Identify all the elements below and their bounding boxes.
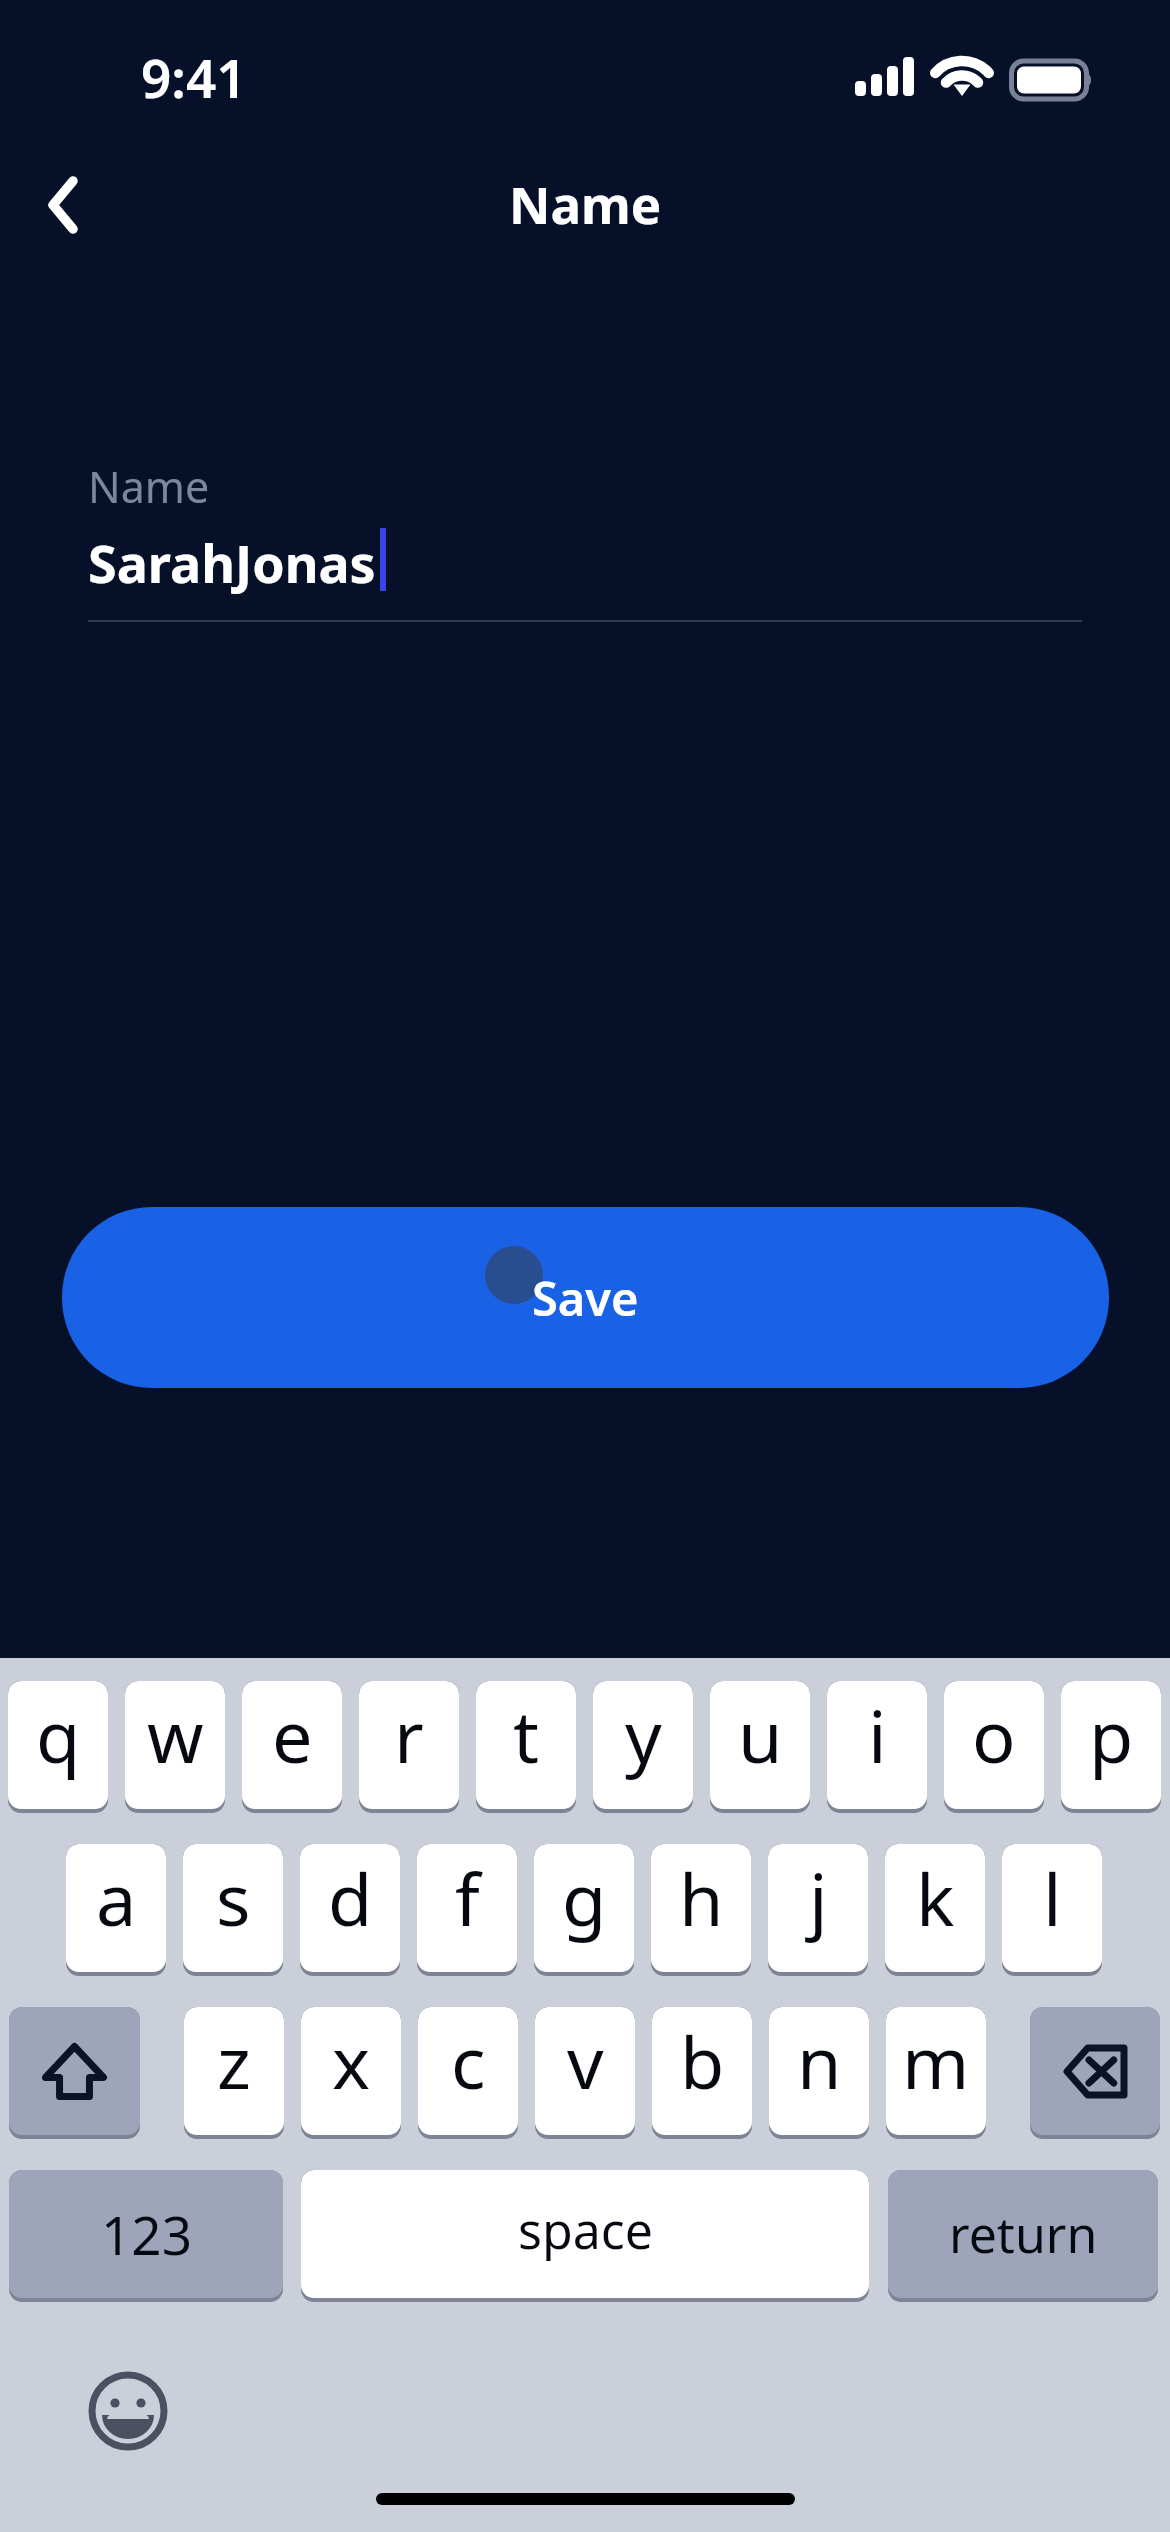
button[interactable]: Save	[62, 1207, 1109, 1388]
staticText: p	[1089, 1686, 1134, 1784]
button[interactable]: g	[534, 1844, 634, 1972]
button[interactable]: s	[183, 1844, 283, 1972]
button[interactable]: w	[125, 1681, 225, 1809]
button[interactable]: u	[710, 1681, 810, 1809]
staticText: e	[272, 1686, 313, 1784]
button[interactable]: b	[652, 2007, 752, 2135]
staticText: t	[513, 1686, 539, 1784]
staticText: f	[455, 1849, 480, 1947]
button[interactable]: c	[418, 2007, 518, 2135]
button[interactable]: Backspace	[1030, 2007, 1160, 2135]
button[interactable]: Back	[13, 155, 113, 255]
button[interactable]: f	[417, 1844, 517, 1972]
button[interactable]: 123	[9, 2170, 283, 2298]
staticText: 9:41	[141, 41, 247, 113]
staticText: j	[809, 1849, 828, 1947]
button[interactable]: r	[359, 1681, 459, 1809]
staticText: b	[680, 2012, 725, 2110]
staticText: z	[217, 2012, 251, 2110]
button[interactable]: k	[885, 1844, 985, 1972]
button[interactable]: q	[8, 1681, 108, 1809]
button[interactable]: o	[944, 1681, 1044, 1809]
staticText: l	[1043, 1849, 1062, 1947]
button[interactable]: a	[66, 1844, 166, 1972]
button[interactable]: Name	[88, 452, 1082, 624]
staticText: v	[567, 2012, 604, 2110]
staticText: y	[625, 1686, 662, 1784]
staticText: n	[797, 2012, 842, 2110]
staticText: m	[902, 2012, 970, 2110]
staticText: space	[518, 2196, 653, 2264]
button[interactable]: n	[769, 2007, 869, 2135]
button[interactable]: Emoji keyboard	[86, 2369, 170, 2453]
button[interactable]: h	[651, 1844, 751, 1972]
button[interactable]: l	[1002, 1844, 1102, 1972]
button[interactable]: i	[827, 1681, 927, 1809]
staticText: 123	[101, 2198, 192, 2270]
staticText: h	[679, 1849, 724, 1947]
button[interactable]: e	[242, 1681, 342, 1809]
staticText: k	[916, 1849, 955, 1947]
button[interactable]: m	[886, 2007, 986, 2135]
button[interactable]: p	[1061, 1681, 1161, 1809]
staticText: x	[332, 2012, 371, 2110]
staticText: o	[972, 1686, 1016, 1784]
button[interactable]: x	[301, 2007, 401, 2135]
staticText: s	[216, 1849, 251, 1947]
button[interactable]: space	[301, 2170, 869, 2298]
staticText: r	[394, 1686, 424, 1784]
button[interactable]: v	[535, 2007, 635, 2135]
button[interactable]: return	[888, 2170, 1158, 2298]
staticText: a	[96, 1849, 137, 1947]
staticText: g	[562, 1849, 607, 1947]
button[interactable]: t	[476, 1681, 576, 1809]
staticText: Name	[88, 457, 210, 516]
staticText: SarahJonas	[88, 527, 376, 598]
staticText: return	[949, 2200, 1098, 2268]
staticText: w	[147, 1686, 204, 1784]
staticText: Name	[509, 169, 662, 238]
button[interactable]: y	[593, 1681, 693, 1809]
staticText: u	[738, 1686, 783, 1784]
staticText: Save	[532, 1266, 639, 1330]
button[interactable]: z	[184, 2007, 284, 2135]
button[interactable]: Shift	[9, 2007, 140, 2135]
staticText: i	[868, 1686, 887, 1784]
staticText: d	[328, 1849, 373, 1947]
staticText: c	[451, 2012, 486, 2110]
staticText: q	[36, 1686, 81, 1784]
button[interactable]: d	[300, 1844, 400, 1972]
button[interactable]: j	[768, 1844, 868, 1972]
